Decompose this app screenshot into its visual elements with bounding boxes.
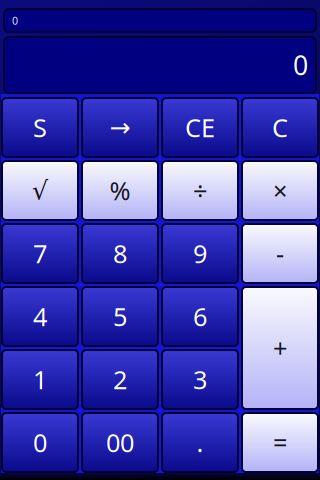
staticText: 4 <box>33 300 47 333</box>
staticText: . <box>196 426 203 459</box>
staticText: × <box>273 174 287 207</box>
button[interactable]: 00 <box>81 412 159 473</box>
button[interactable]: 3 <box>161 349 239 410</box>
staticText: 8 <box>113 237 127 270</box>
staticText: - <box>276 237 284 270</box>
button[interactable]: → <box>81 97 159 158</box>
staticText: 7 <box>33 237 47 270</box>
button[interactable]: 0 <box>1 412 79 473</box>
staticText: 5 <box>113 300 127 333</box>
staticText: C <box>272 111 288 144</box>
button[interactable]: 9 <box>161 223 239 284</box>
staticText: + <box>273 331 287 365</box>
staticText: √ <box>32 176 48 205</box>
button[interactable]: . <box>161 412 239 473</box>
staticText: CE <box>185 111 215 144</box>
staticText: ÷ <box>193 174 207 207</box>
button[interactable]: % <box>81 160 159 221</box>
button[interactable]: × <box>241 160 319 221</box>
staticText: 00 <box>106 426 134 459</box>
staticText: 0 <box>293 47 308 83</box>
staticText: 6 <box>193 300 207 333</box>
button[interactable]: √ <box>1 160 79 221</box>
button[interactable]: C <box>241 97 319 158</box>
staticText: % <box>109 174 130 207</box>
button[interactable]: 1 <box>1 349 79 410</box>
staticText: 0 <box>12 13 18 28</box>
button[interactable]: 2 <box>81 349 159 410</box>
button[interactable]: - <box>241 223 319 284</box>
staticText: → <box>109 113 130 142</box>
button[interactable]: + <box>241 286 319 410</box>
button[interactable]: 7 <box>1 223 79 284</box>
staticText: 9 <box>193 237 207 270</box>
button[interactable]: = <box>241 412 319 473</box>
button[interactable]: 5 <box>81 286 159 347</box>
staticText: 1 <box>33 363 47 396</box>
button[interactable]: 6 <box>161 286 239 347</box>
staticText: 0 <box>33 426 47 459</box>
staticText: = <box>273 426 287 459</box>
button[interactable]: CE <box>161 97 239 158</box>
button[interactable]: 8 <box>81 223 159 284</box>
button[interactable]: ÷ <box>161 160 239 221</box>
button[interactable]: S <box>1 97 79 158</box>
staticText: S <box>33 111 47 144</box>
staticText: 2 <box>113 363 127 396</box>
staticText: 3 <box>193 363 207 396</box>
button[interactable]: 4 <box>1 286 79 347</box>
